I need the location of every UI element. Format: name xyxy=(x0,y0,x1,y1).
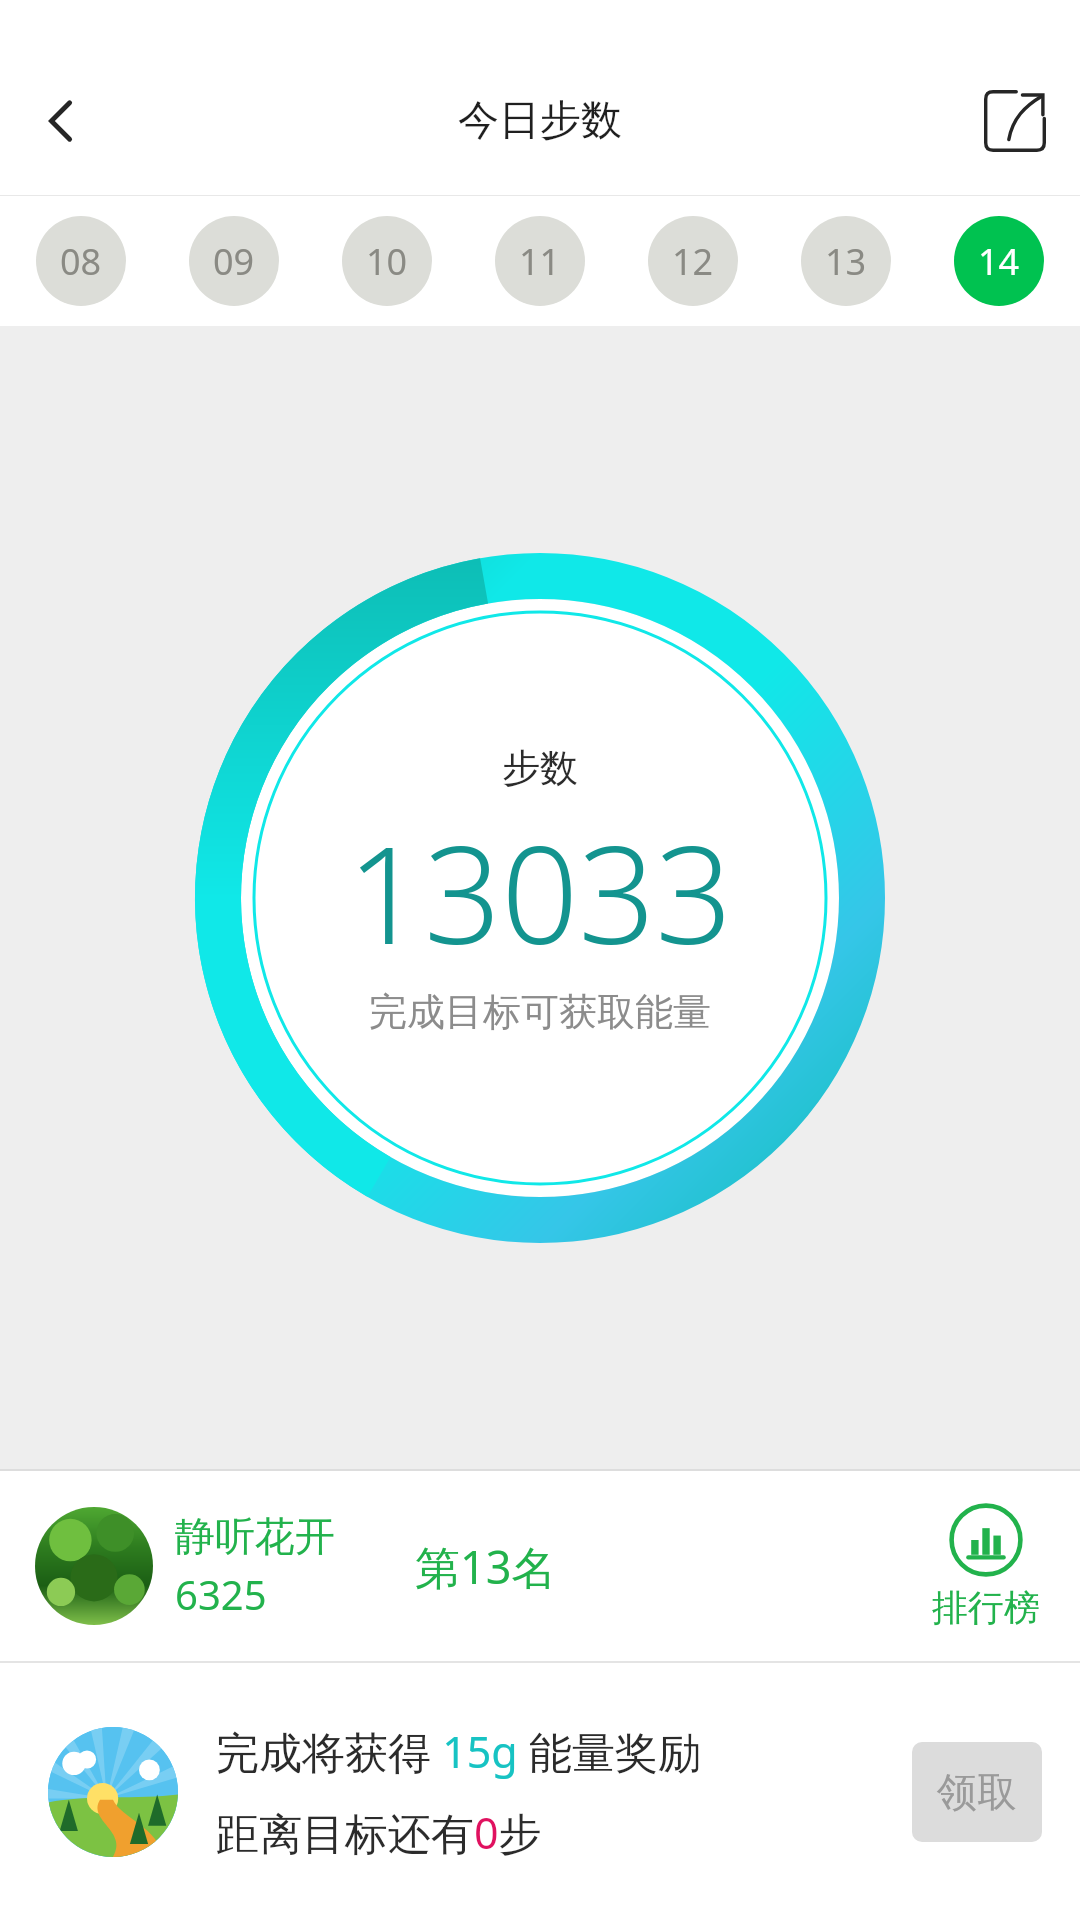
staticText: 步数 xyxy=(502,744,578,792)
staticText: 静听花开 xyxy=(175,1511,335,1561)
button[interactable]: 11 xyxy=(495,216,585,306)
staticText: 完成目标可获取能量 xyxy=(369,988,711,1036)
button[interactable]: Steps progress xyxy=(160,518,920,1278)
button[interactable]: 13 xyxy=(801,216,891,306)
staticText: 09 xyxy=(213,237,255,286)
button[interactable]: 14 xyxy=(954,216,1044,306)
button[interactable]: 12 xyxy=(648,216,738,306)
staticText: 完成将获得 15g 能量奖励 xyxy=(216,1722,701,1781)
staticText: 12 xyxy=(672,237,714,286)
staticText: 10 xyxy=(366,237,408,286)
staticText: 14 xyxy=(978,237,1020,286)
staticText: 08 xyxy=(60,237,102,286)
staticText: 今日步数 xyxy=(458,95,622,147)
staticText: 11 xyxy=(519,237,561,286)
staticText: 领取 xyxy=(937,1767,1017,1817)
button[interactable]: 排行榜 xyxy=(922,1503,1050,1630)
button[interactable]: 静听花开 xyxy=(0,1471,1080,1661)
button[interactable]: Share xyxy=(972,78,1058,164)
button[interactable]: 09 xyxy=(189,216,279,306)
button[interactable]: Back xyxy=(18,78,104,164)
staticText: 6325 xyxy=(175,1567,267,1621)
button[interactable]: 10 xyxy=(342,216,432,306)
staticText: 第13名 xyxy=(415,1536,557,1597)
staticText: 13 xyxy=(825,237,867,286)
staticText: 13033 xyxy=(347,800,733,984)
button[interactable]: 领取 xyxy=(912,1742,1042,1842)
button[interactable]: 08 xyxy=(36,216,126,306)
staticText: 距离目标还有0步 xyxy=(216,1803,542,1862)
staticText: 排行榜 xyxy=(932,1585,1040,1630)
